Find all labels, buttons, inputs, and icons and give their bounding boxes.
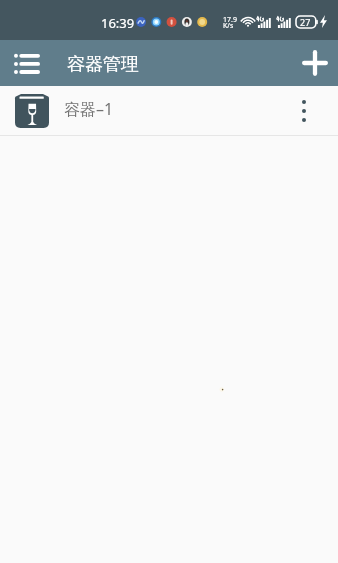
staticText: 容器–1 [64,98,114,120]
button[interactable]: Add container [293,41,337,85]
staticText: 27 [300,16,311,28]
staticText: 容器管理 [67,53,139,76]
staticText: 16:39 [101,14,135,32]
staticText: 17.9 [223,15,237,25]
button[interactable]: Open navigation menu [5,40,49,84]
button[interactable]: More options [284,91,324,131]
button[interactable]: 容器–1 [0,86,338,135]
staticText: K/s [223,21,234,31]
